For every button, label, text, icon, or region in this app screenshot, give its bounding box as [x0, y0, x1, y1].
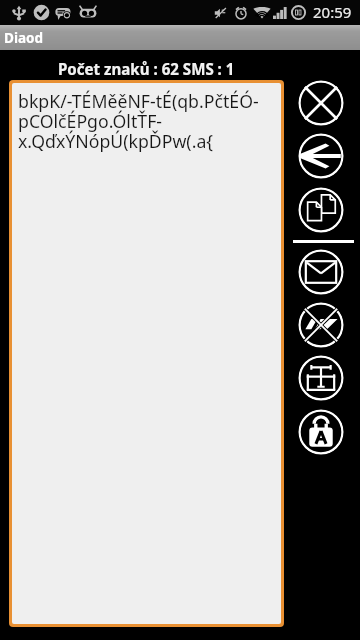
button[interactable]: Back	[298, 133, 344, 179]
button[interactable]: Mute	[298, 302, 344, 348]
button[interactable]: bkpK/-TÉMěěNF-tÉ(qb.PčtÉÓ- pCOlčÉPgo.Ólt…	[12, 83, 281, 624]
button[interactable]: Text size	[298, 355, 344, 401]
button[interactable]: Lock	[298, 409, 344, 455]
staticText: 20:59	[313, 2, 352, 22]
button[interactable]: Send mail	[298, 249, 344, 295]
button[interactable]: Close	[298, 80, 344, 126]
staticText: bkpK/-TÉMěěNF-tÉ(qb.PčtÉÓ- pCOlčÉPgo.Ólt…	[18, 89, 259, 153]
button[interactable]: Copy	[298, 187, 344, 233]
staticText: Počet znaků : 62 SMS : 1	[58, 59, 235, 80]
staticText: Diaod	[4, 29, 43, 47]
